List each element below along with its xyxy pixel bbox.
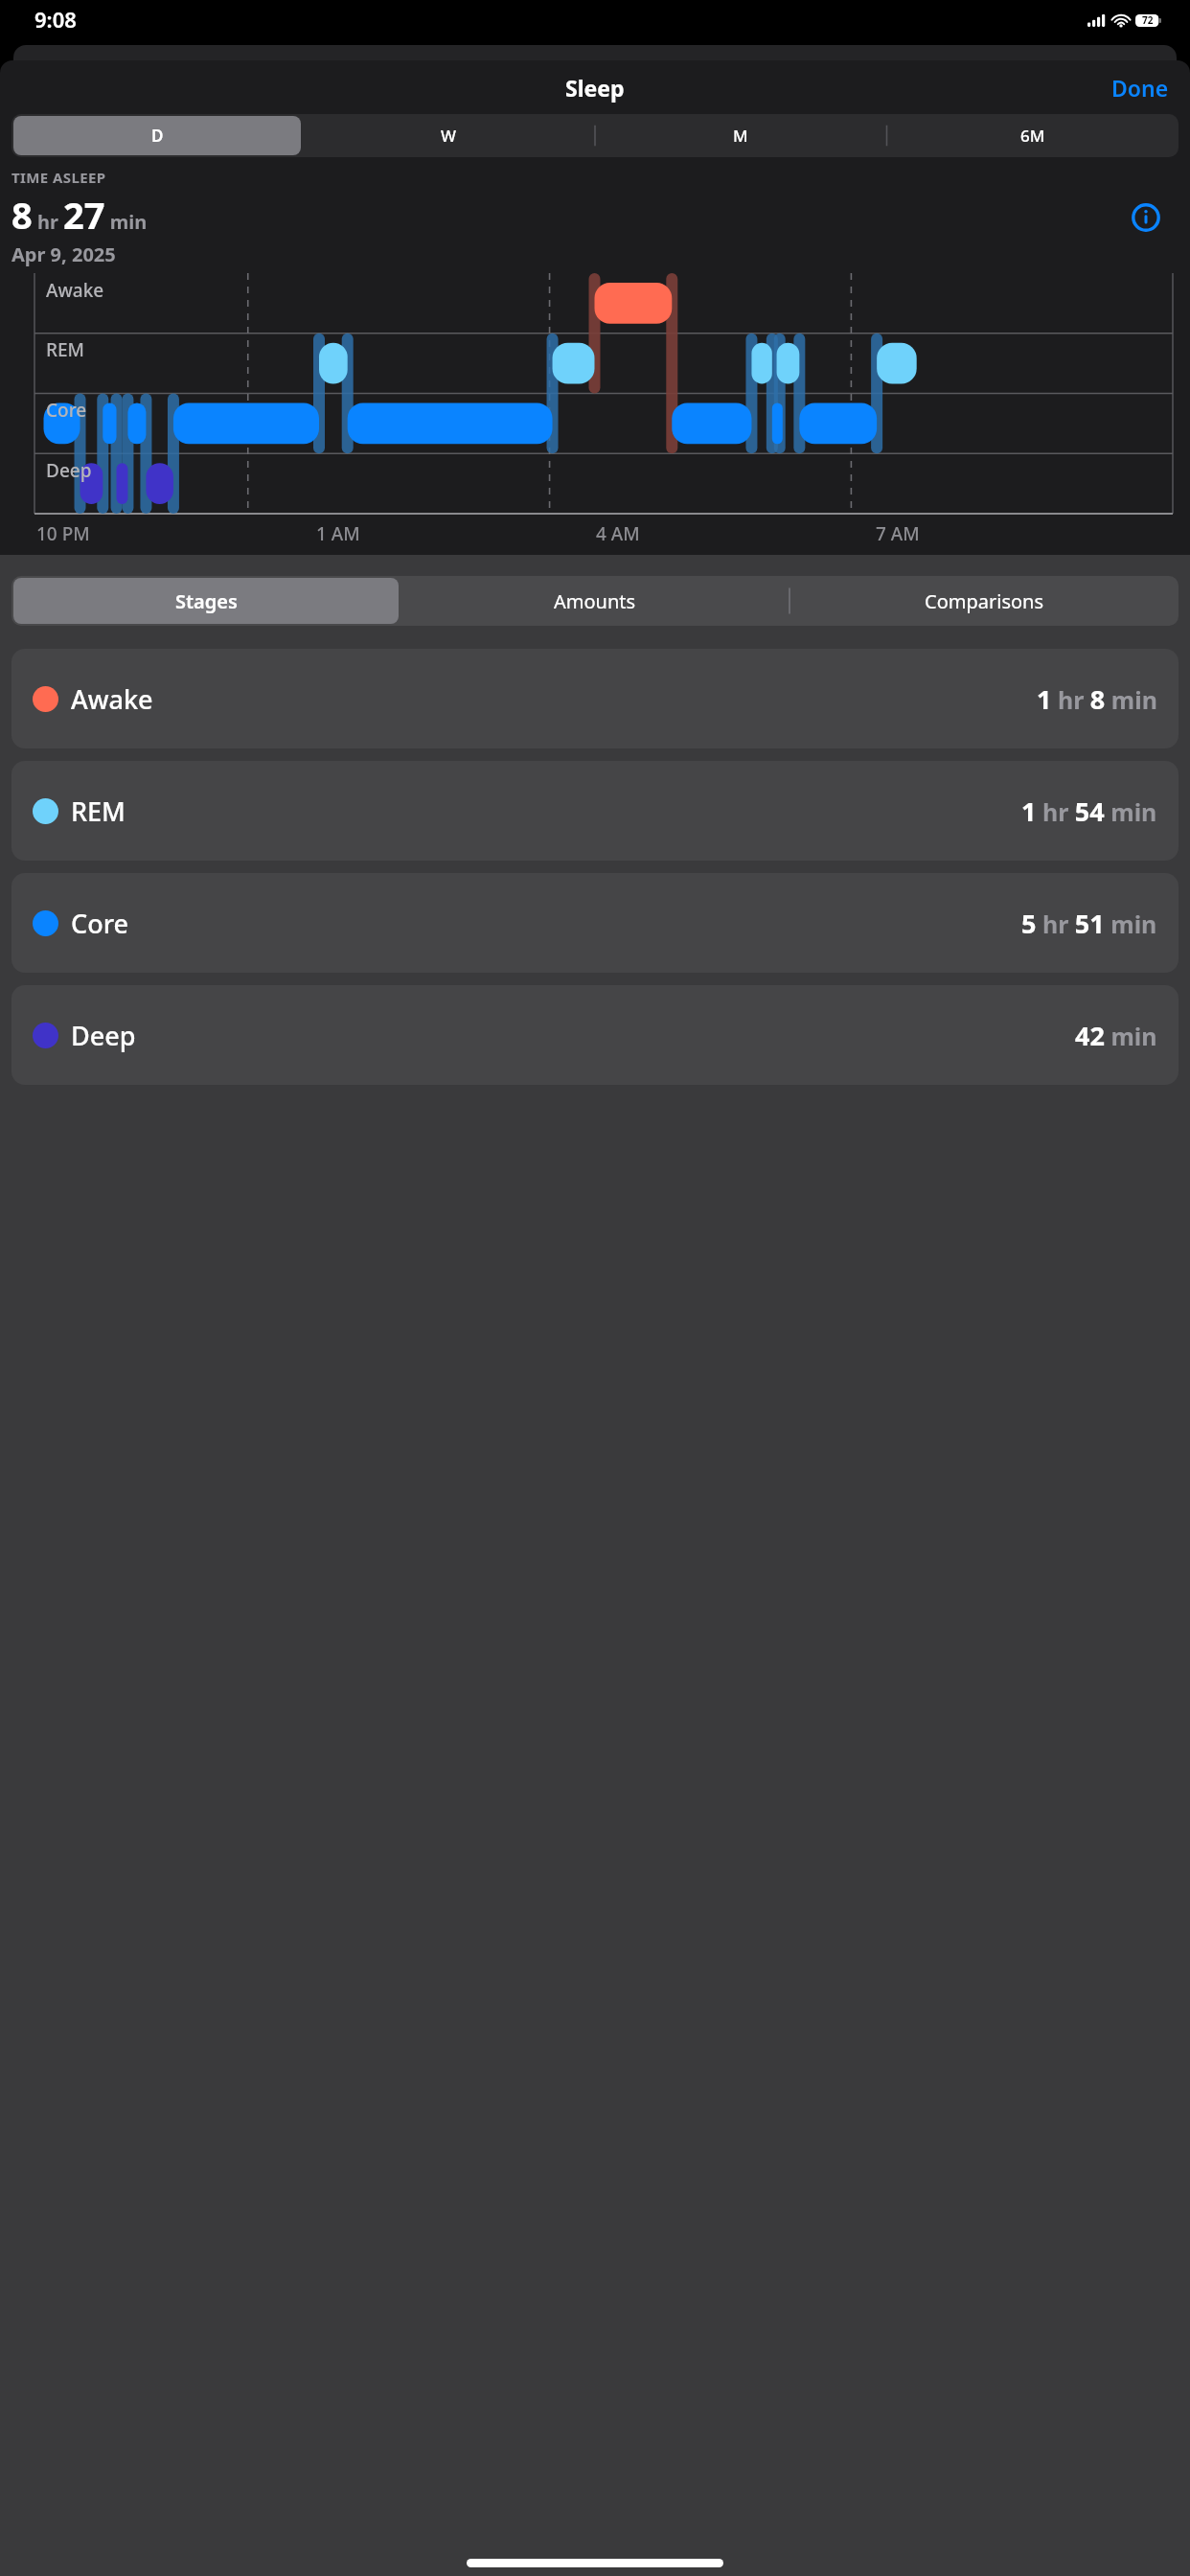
button[interactable]: Done	[1090, 65, 1190, 110]
button[interactable]: Core	[11, 873, 1179, 973]
staticText: 6M	[1020, 125, 1045, 147]
staticText: 4 AM	[596, 521, 640, 546]
staticText: Core	[46, 398, 87, 423]
button[interactable]: D	[13, 116, 301, 155]
button[interactable]: Comparisons	[791, 578, 1177, 624]
button[interactable]: M	[596, 116, 884, 155]
button[interactable]: W	[305, 116, 592, 155]
staticText: 72	[1142, 13, 1154, 27]
staticText: Done	[1111, 73, 1169, 103]
staticText: 42 min	[1075, 1018, 1157, 1053]
staticText: TIME ASLEEP	[11, 168, 106, 187]
staticText: 8 hr 27 min	[11, 190, 148, 240]
staticText: Deep	[46, 458, 92, 483]
staticText: 7 AM	[876, 521, 920, 546]
staticText: Deep	[71, 1018, 136, 1053]
button[interactable]: Deep	[11, 985, 1179, 1085]
staticText: 10 PM	[36, 521, 90, 546]
staticText: REM	[46, 337, 85, 362]
staticText: Sleep	[565, 73, 625, 103]
staticText: Comparisons	[925, 588, 1043, 614]
staticText: REM	[71, 793, 126, 829]
button[interactable]: Awake	[11, 649, 1179, 748]
staticText: 5 hr 51 min	[1021, 906, 1157, 941]
staticText: 1 hr 8 min	[1037, 681, 1157, 717]
button[interactable]: REM	[11, 761, 1179, 861]
staticText: Awake	[46, 278, 104, 303]
staticText: Awake	[71, 681, 153, 717]
staticText: Core	[71, 906, 129, 941]
staticText: 9:08	[34, 5, 77, 34]
button[interactable]: Amounts	[402, 578, 788, 624]
button[interactable]: Information about time asleep	[1125, 196, 1167, 239]
staticText: M	[733, 125, 748, 147]
staticText: W	[441, 125, 456, 147]
staticText: D	[151, 125, 164, 147]
button[interactable]: 6M	[888, 116, 1177, 155]
staticText: Stages	[175, 588, 238, 614]
button[interactable]: Stages	[13, 578, 399, 624]
staticText: Apr 9, 2025	[11, 241, 116, 267]
staticText: Amounts	[554, 588, 636, 614]
staticText: 1 AM	[316, 521, 360, 546]
staticText: 1 hr 54 min	[1021, 793, 1157, 829]
